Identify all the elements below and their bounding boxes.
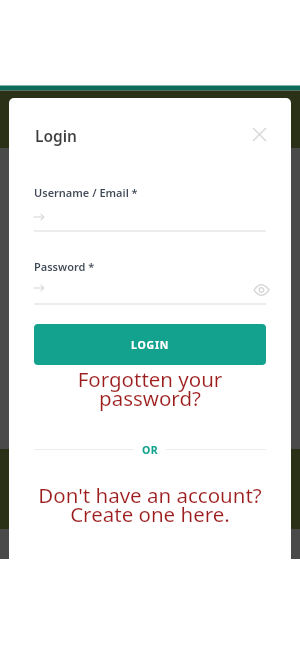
staticText: Username / Email *: [34, 185, 138, 200]
button[interactable]: Forgotten your password?: [0, 365, 300, 412]
button[interactable]: LOGIN: [34, 324, 266, 365]
staticText: Forgotten your password?: [0, 365, 300, 412]
staticText: Password *: [34, 259, 95, 274]
button[interactable]: [249, 280, 273, 300]
staticText: Login: [35, 125, 78, 146]
button[interactable]: [245, 120, 273, 148]
staticText: OR: [142, 443, 159, 457]
staticText: LOGIN: [131, 338, 170, 352]
button[interactable]: Don't have an account? Create one here.: [0, 481, 300, 528]
staticText: Don't have an account? Create one here.: [0, 481, 300, 528]
